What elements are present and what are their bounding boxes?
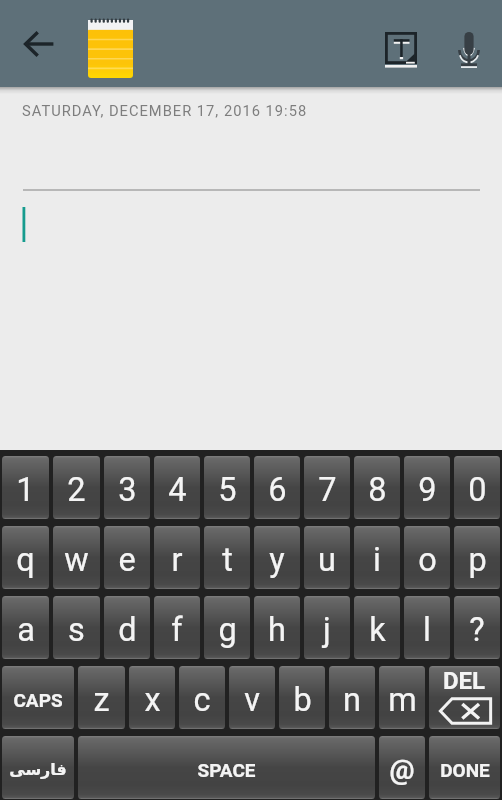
- button[interactable]: 6: [254, 456, 300, 519]
- staticText: n: [343, 681, 361, 719]
- button[interactable]: r: [154, 526, 200, 589]
- staticText: d: [118, 611, 137, 649]
- staticText: v: [244, 681, 260, 719]
- button[interactable]: 0: [454, 456, 500, 519]
- staticText: فارسی: [9, 760, 67, 779]
- staticText: g: [218, 611, 237, 649]
- staticText: 4: [168, 471, 187, 509]
- staticText: SPACE: [197, 759, 256, 781]
- button[interactable]: 4: [154, 456, 200, 519]
- button[interactable]: x: [129, 666, 175, 729]
- button[interactable]: Text format: [369, 16, 435, 72]
- staticText: c: [193, 681, 211, 719]
- button[interactable]: v: [229, 666, 275, 729]
- button[interactable]: ?: [454, 596, 500, 659]
- button[interactable]: SPACE: [78, 736, 375, 799]
- button[interactable]: 3: [104, 456, 150, 519]
- staticText: ?: [469, 611, 485, 649]
- button[interactable]: z: [78, 666, 125, 729]
- staticText: o: [418, 541, 437, 579]
- staticText: 5: [218, 471, 237, 509]
- staticText: 2: [67, 471, 86, 509]
- staticText: t: [222, 541, 233, 579]
- staticText: z: [93, 681, 110, 719]
- button[interactable]: w: [53, 526, 100, 589]
- button[interactable]: 7: [304, 456, 350, 519]
- staticText: s: [68, 611, 85, 649]
- button[interactable]: e: [104, 526, 150, 589]
- staticText: 3: [118, 471, 137, 509]
- button[interactable]: m: [379, 666, 425, 729]
- button[interactable]: b: [279, 666, 325, 729]
- staticText: i: [373, 541, 381, 579]
- button[interactable]: i: [354, 526, 400, 589]
- staticText: 7: [318, 471, 337, 509]
- button[interactable]: q: [2, 526, 49, 589]
- button[interactable]: l: [404, 596, 450, 659]
- button[interactable]: Voice input: [437, 16, 499, 72]
- button[interactable]: Back: [6, 16, 72, 72]
- staticText: 8: [368, 471, 387, 509]
- button[interactable]: s: [53, 596, 100, 659]
- staticText: DONE: [440, 759, 490, 781]
- staticText: r: [171, 541, 183, 579]
- staticText: k: [369, 611, 386, 649]
- button[interactable]: g: [204, 596, 250, 659]
- staticText: e: [118, 541, 136, 579]
- button[interactable]: CAPS: [2, 666, 74, 729]
- button[interactable]: y: [254, 526, 300, 589]
- staticText: q: [16, 541, 35, 579]
- button[interactable]: c: [179, 666, 225, 729]
- button[interactable]: فارسی: [2, 736, 74, 799]
- staticText: CAPS: [13, 689, 63, 711]
- staticText: 1: [16, 471, 35, 509]
- staticText: x: [144, 681, 161, 719]
- button[interactable]: d: [104, 596, 150, 659]
- staticText: w: [64, 541, 89, 579]
- button[interactable]: k: [354, 596, 400, 659]
- staticText: u: [318, 541, 336, 579]
- staticText: a: [17, 611, 35, 649]
- staticText: m: [388, 681, 417, 719]
- button[interactable]: u: [304, 526, 350, 589]
- button[interactable]: o: [404, 526, 450, 589]
- staticText: 6: [268, 471, 287, 509]
- staticText: 0: [468, 471, 487, 509]
- staticText: b: [293, 681, 312, 719]
- staticText: SATURDAY, DECEMBER 17, 2016 19:58: [22, 102, 308, 119]
- button[interactable]: 9: [404, 456, 450, 519]
- button[interactable]: 2: [53, 456, 100, 519]
- button[interactable]: n: [329, 666, 375, 729]
- staticText: p: [468, 541, 487, 579]
- staticText: 9: [418, 471, 437, 509]
- button[interactable]: p: [454, 526, 500, 589]
- button[interactable]: j: [304, 596, 350, 659]
- staticText: y: [269, 541, 285, 579]
- button[interactable]: h: [254, 596, 300, 659]
- button[interactable]: a: [2, 596, 49, 659]
- button[interactable]: t: [204, 526, 250, 589]
- button[interactable]: f: [154, 596, 200, 659]
- staticText: j: [323, 611, 331, 649]
- staticText: f: [171, 611, 183, 649]
- staticText: DEL: [443, 667, 486, 695]
- button[interactable]: 1: [2, 456, 49, 519]
- button[interactable]: 8: [354, 456, 400, 519]
- staticText: h: [268, 611, 286, 649]
- button[interactable]: @: [379, 736, 425, 799]
- button[interactable]: DEL: [429, 666, 500, 729]
- staticText: l: [423, 611, 431, 649]
- button[interactable]: DONE: [429, 736, 500, 799]
- staticText: @: [389, 753, 415, 786]
- button[interactable]: 5: [204, 456, 250, 519]
